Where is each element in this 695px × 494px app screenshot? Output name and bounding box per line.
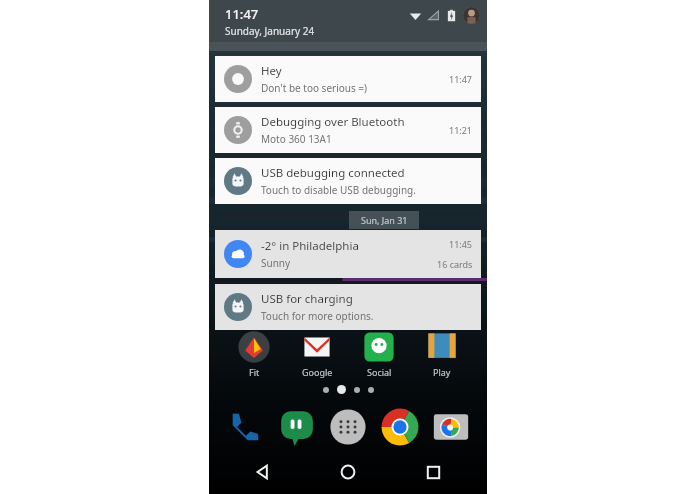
button[interactable]: Fit: [226, 330, 282, 378]
staticText: Touch to disable USB debugging.: [261, 183, 416, 197]
staticText: Social: [367, 366, 392, 378]
staticText: 16 cards: [437, 258, 473, 270]
button[interactable]: Social: [351, 330, 407, 378]
staticText: Sunday, January 24: [225, 24, 315, 38]
button[interactable]: Back: [232, 450, 294, 494]
staticText: 11:47: [225, 5, 259, 23]
button[interactable]: Chrome: [378, 405, 422, 449]
button[interactable]: Debugging over Bluetooth: [215, 107, 481, 153]
staticText: Google: [302, 366, 333, 378]
staticText: 11:47: [449, 73, 473, 85]
button[interactable]: Hey: [215, 56, 481, 102]
staticText: USB for charging: [261, 291, 353, 307]
button[interactable]: USB debugging connected: [215, 158, 481, 204]
button[interactable]: Recents: [402, 450, 464, 494]
button[interactable]: All apps: [326, 405, 370, 449]
staticText: Sunny: [261, 256, 291, 270]
button[interactable]: -2° in Philadelphia: [215, 230, 481, 278]
staticText: 11:21: [449, 124, 473, 136]
staticText: Don't be too serious =): [261, 81, 368, 95]
staticText: Hey: [261, 63, 282, 79]
staticText: USB debugging connected: [261, 165, 405, 181]
button[interactable]: User profile: [463, 7, 480, 24]
staticText: 11:45: [449, 238, 473, 250]
staticText: -2° in Philadelphia: [261, 238, 359, 254]
button[interactable]: Home: [317, 450, 379, 494]
staticText: Touch for more options.: [261, 309, 374, 323]
staticText: Moto 360 13A1: [261, 132, 332, 146]
button[interactable]: Phone: [223, 405, 267, 449]
button[interactable]: USB for charging: [215, 284, 481, 330]
button[interactable]: Play: [414, 330, 470, 378]
staticText: Sun, Jan 31: [361, 214, 408, 226]
staticText: Fit: [249, 366, 260, 378]
button[interactable]: Google: [289, 330, 345, 378]
staticText: Play: [433, 366, 451, 378]
staticText: Debugging over Bluetooth: [261, 114, 405, 130]
button[interactable]: Hangouts: [275, 405, 319, 449]
button[interactable]: Camera: [429, 405, 473, 449]
